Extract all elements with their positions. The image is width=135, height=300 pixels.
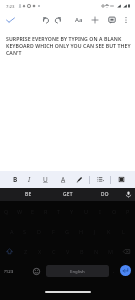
staticText: J [94,228,96,235]
staticText: B [80,248,84,255]
staticText: Y [70,208,74,215]
button[interactable]: ?123 [2,261,15,281]
staticText: GET [63,191,73,198]
staticText: ?123 [4,268,14,274]
staticText: DO [101,191,109,198]
button[interactable]: Aa [73,11,84,28]
staticText: D [37,228,42,235]
button[interactable]: Done [4,11,17,28]
staticText: H [79,228,84,235]
button[interactable]: A [58,171,68,188]
button[interactable]: Undo [41,11,50,28]
button[interactable]: I [24,171,34,188]
staticText: I [28,175,31,184]
button[interactable]: DO [95,188,115,201]
staticText: B [13,175,18,184]
staticText: BE [25,191,32,198]
staticText: V [66,248,70,255]
button[interactable]: U [40,171,50,188]
button[interactable]: Paragraph style [95,171,105,188]
staticText: T [57,208,61,215]
button[interactable]: More options [121,11,130,28]
button[interactable]: Voice input [123,188,133,201]
staticText: R [44,208,48,215]
staticText: A [10,228,14,235]
staticText: M [108,248,113,255]
staticText: X [38,248,42,255]
staticText: . [113,268,115,274]
button[interactable]: Redo [53,11,62,28]
button[interactable]: Emoji [31,261,41,281]
button[interactable]: Backspace [117,241,135,261]
staticText: Aa [75,16,83,24]
staticText: English [70,268,85,274]
staticText: A [61,175,66,184]
button[interactable]: Shift [0,241,18,261]
staticText: P [126,208,130,215]
staticText: O [112,208,117,215]
button[interactable]: Enter [120,265,131,276]
staticText: Z [24,248,28,255]
button[interactable]: English [46,265,109,277]
staticText: K [107,228,111,235]
staticText: N [94,248,99,255]
staticText: C [52,248,56,255]
staticText: G [65,228,70,235]
button[interactable]: GET [58,188,78,201]
staticText: W [17,208,23,215]
button[interactable]: B [10,171,20,188]
staticText: U [84,208,89,215]
staticText: L [122,228,125,235]
staticText: SURPRISE EVERYONE BY TYPING ON A BLANK K… [6,35,131,56]
button[interactable]: Comment [107,11,116,28]
button[interactable]: BE [18,188,38,201]
button[interactable]: Highlight [74,171,84,188]
staticText: Q [4,208,9,215]
staticText: F [52,228,55,235]
staticText: 7:23 [6,3,15,9]
button[interactable]: Insert [90,11,99,28]
button[interactable]: Insert table [116,171,126,188]
staticText: U [43,175,48,184]
